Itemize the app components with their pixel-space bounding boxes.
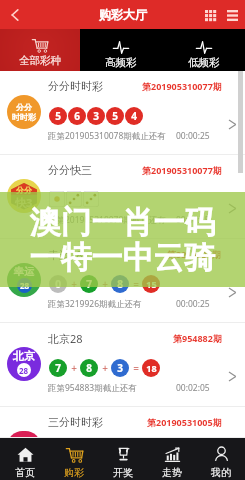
staticText: 快3 [15,195,33,210]
staticText: 走势 [162,466,182,479]
button[interactable]: 购彩 [49,438,98,480]
staticText: 开奖 [113,466,133,479]
button[interactable]: 我的 [196,438,245,480]
staticText: 高频彩 [105,56,137,69]
staticText: 00:00:25 [176,130,210,142]
staticText: 三分时时彩 [48,415,103,429]
staticText: 28 [19,365,29,376]
staticText: 5 [55,109,61,123]
button[interactable]: 全部彩种 [0,29,80,71]
staticText: 分分 [16,102,32,112]
staticText: 北京 [13,349,35,363]
staticText: 一特一中云骑 [0,238,245,277]
staticText: 距第20190531006期截止还有 [48,466,161,478]
button[interactable]: 北京 [0,323,245,407]
staticText: 距第201905310078期截止还有 [48,130,166,142]
staticText: 8 [117,277,123,291]
staticText: 00:00:25 [176,214,210,226]
button[interactable]: 幸运 [0,239,245,323]
button[interactable]: 分分 [0,155,245,239]
staticText: 第3219926期 [167,248,222,260]
staticText: 澳门一肖一码 [0,203,245,242]
staticText: 我的 [211,466,231,479]
button[interactable]: 高频彩 [80,29,162,71]
staticText: 00:02:05 [176,382,210,394]
staticText: 3 [117,361,123,375]
staticText: 距第3219926期截止还有 [48,298,142,310]
staticText: 00:00:25 [176,466,210,478]
staticText: 7 [86,277,92,291]
staticText: 18 [146,362,157,374]
staticText: 4 [131,109,137,123]
staticText: 3 [93,109,99,123]
staticText: 首页 [15,466,35,479]
staticText: 购彩大厅 [99,7,147,22]
staticText: 分分快三 [48,163,92,177]
button[interactable]: Back [0,0,30,29]
staticText: 分分时时彩 [48,79,103,93]
staticText: 三分 [16,437,32,447]
staticText: 第201905310077期 [142,80,222,92]
staticText: 第201905310077期 [142,164,222,176]
button[interactable]: 首页 [0,438,49,480]
button[interactable]: 三分 [0,407,245,438]
staticText: 距第201905310078期截止还有 [48,214,166,226]
staticText: + [102,277,108,291]
staticText: 低频彩 [188,56,220,69]
button[interactable]: Grid view [199,4,221,26]
button[interactable]: 低频彩 [162,29,245,71]
staticText: = [133,361,139,375]
staticText: = [133,277,139,291]
staticText: 距第954883期截止还有 [48,382,137,394]
staticText: 时时彩 [12,447,36,457]
staticText: 6 [74,445,80,459]
staticText: 分分 [16,185,32,195]
staticText: + [102,361,108,375]
button[interactable]: 走势 [147,438,196,480]
staticText: 0 [55,277,61,291]
staticText: 全部彩种 [19,54,61,67]
staticText: 幸运 [14,265,34,278]
staticText: 8 [86,361,92,375]
staticText: + [71,361,77,375]
staticText: 购彩 [64,466,84,479]
staticText: 第954882期 [173,332,222,344]
staticText: 7 [55,361,61,375]
button[interactable]: 分分 [0,71,245,155]
staticText: 北京28 [48,331,83,346]
button[interactable]: 开奖 [98,438,147,480]
staticText: 6 [74,109,80,123]
staticText: 00:00:25 [176,298,210,310]
staticText: 28 [20,280,30,291]
staticText: 时时彩 [12,112,36,122]
staticText: + [71,277,77,291]
staticText: 第20190531005期 [147,416,222,428]
staticText: 5 [112,109,118,123]
staticText: 幸运28 [48,247,83,262]
button[interactable]: Menu [221,4,243,26]
staticText: 15 [146,278,157,290]
